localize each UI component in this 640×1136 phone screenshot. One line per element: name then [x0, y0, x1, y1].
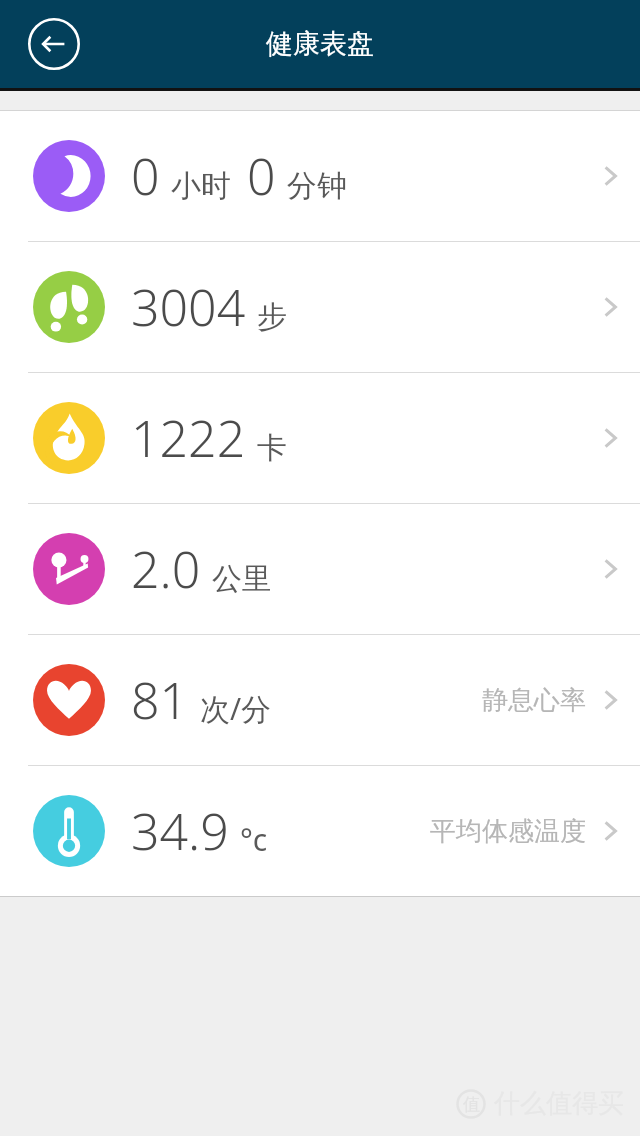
- staticText: 平均体感温度: [430, 815, 586, 848]
- staticText: 0: [247, 142, 276, 210]
- staticText: 卡: [257, 429, 287, 467]
- staticText: 小时: [171, 167, 231, 205]
- staticText: °c: [240, 819, 268, 860]
- staticText: 3004: [131, 273, 246, 341]
- button[interactable]: 0: [0, 111, 640, 242]
- staticText: 0: [131, 142, 160, 210]
- staticText: 静息心率: [482, 684, 586, 717]
- button[interactable]: Back: [22, 12, 86, 76]
- staticText: 分钟: [287, 167, 347, 205]
- staticText: 2.0: [131, 535, 201, 603]
- staticText: 值: [463, 1094, 480, 1115]
- button[interactable]: 1222: [0, 373, 640, 504]
- staticText: 公里: [212, 560, 272, 598]
- button[interactable]: 3004: [0, 242, 640, 373]
- button[interactable]: 81: [0, 635, 640, 766]
- staticText: 步: [257, 298, 287, 336]
- button[interactable]: 34.9: [0, 766, 640, 896]
- button[interactable]: 2.0: [0, 504, 640, 635]
- staticText: 81: [131, 666, 189, 734]
- staticText: 健康表盘: [266, 27, 374, 61]
- staticText: 次/分: [200, 688, 272, 729]
- staticText: 1222: [131, 404, 246, 472]
- staticText: 什么值得买: [494, 1087, 624, 1120]
- staticText: 34.9: [131, 797, 229, 865]
